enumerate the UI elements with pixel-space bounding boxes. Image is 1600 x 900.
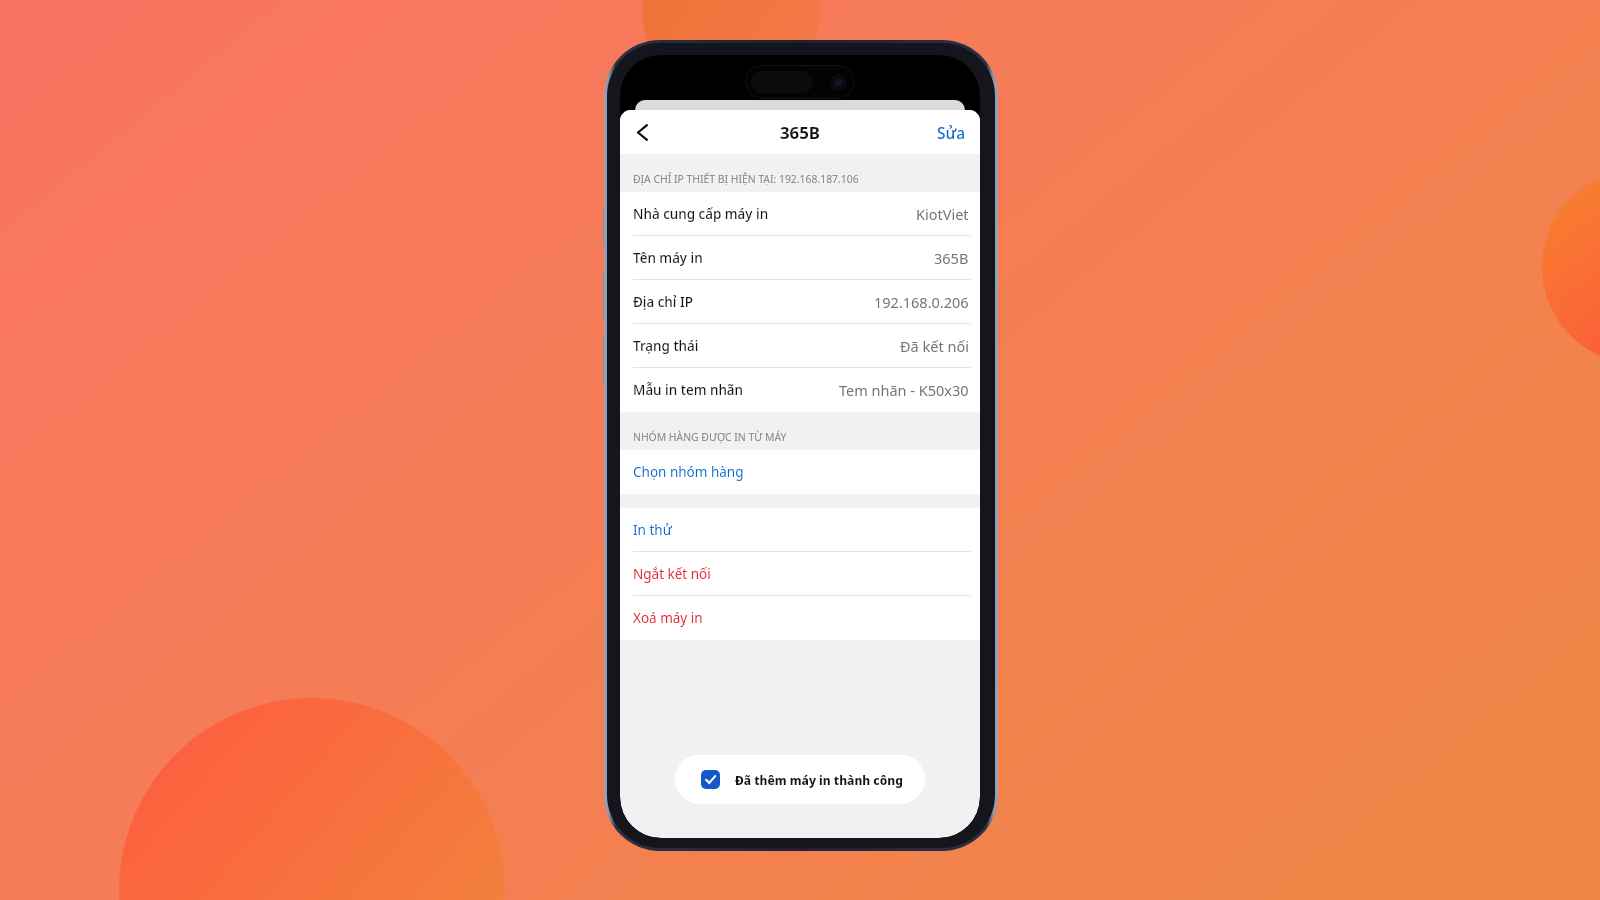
staticText: Đã kết nối [900, 336, 969, 356]
staticText: 192.168.0.206 [874, 292, 969, 312]
staticText: Tem nhãn - K50x30 [839, 380, 969, 400]
staticText: Xoá máy in [633, 609, 703, 627]
staticText: 365B [780, 121, 820, 144]
staticText: In thử [633, 521, 672, 539]
staticText: ĐỊA CHỈ IP THIẾT BỊ HIỆN TẠI: 192.168.18… [633, 172, 859, 186]
staticText: Sửa [937, 122, 966, 143]
button[interactable]: Xoá máy in [620, 596, 980, 640]
staticText: KiotViet [916, 204, 969, 224]
staticText: Nhà cung cấp máy in [633, 205, 769, 223]
staticText: 365B [934, 248, 969, 268]
button[interactable]: Tên máy in [620, 236, 980, 280]
button[interactable]: Trạng thái [620, 324, 980, 368]
button[interactable]: Mẫu in tem nhãn [620, 368, 980, 412]
button[interactable]: Sửa [931, 114, 972, 151]
button[interactable]: Chọn nhóm hàng [620, 450, 980, 494]
staticText: Đã thêm máy in thành công [735, 772, 903, 788]
staticText: Tên máy in [633, 249, 703, 267]
staticText: Ngắt kết nối [633, 565, 711, 583]
button[interactable]: Địa chỉ IP [620, 280, 980, 324]
button[interactable]: Ngắt kết nối [620, 552, 980, 596]
staticText: Trạng thái [633, 337, 699, 355]
button[interactable]: Nhà cung cấp máy in [620, 192, 980, 236]
button[interactable]: Back [621, 111, 663, 153]
staticText: Mẫu in tem nhãn [633, 381, 744, 399]
staticText: Địa chỉ IP [633, 293, 694, 311]
button[interactable]: Đã thêm máy in thành công [675, 755, 925, 804]
button[interactable]: In thử [620, 508, 980, 552]
staticText: Chọn nhóm hàng [633, 463, 744, 481]
staticText: NHÓM HÀNG ĐƯỢC IN TỪ MÁY [633, 430, 787, 444]
